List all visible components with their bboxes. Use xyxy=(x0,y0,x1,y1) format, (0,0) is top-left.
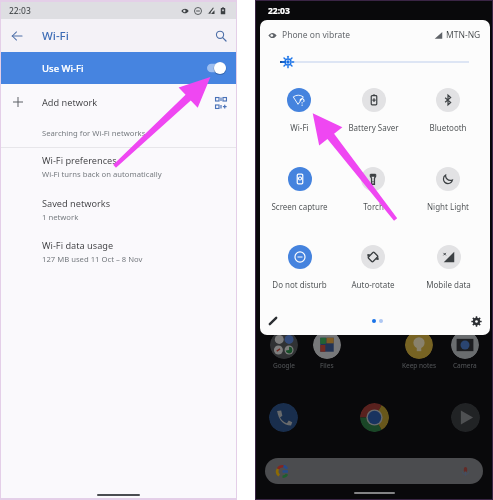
staticText: Torch xyxy=(363,201,384,212)
staticText: Night Light xyxy=(427,201,469,212)
staticText: Wi-Fi xyxy=(290,122,309,133)
button[interactable]: Battery Saver xyxy=(343,88,403,138)
button[interactable]: Night Light xyxy=(418,167,478,217)
button[interactable] xyxy=(451,331,479,359)
staticText: Wi-Fi turns back on automatically xyxy=(42,169,162,179)
staticText: 127 MB used 11 Oct – 8 Nov xyxy=(42,254,143,264)
button[interactable]: Back xyxy=(8,27,25,44)
staticText: Searching for Wi-Fi networks xyxy=(42,128,146,138)
staticText: Keep notes xyxy=(402,361,437,370)
staticText: Wi-Fi data usage xyxy=(42,239,114,252)
button[interactable]: Saved networks xyxy=(1,197,236,227)
button[interactable] xyxy=(270,331,298,359)
staticText: Do not disturb xyxy=(272,279,327,290)
button[interactable]: Wi-Fi xyxy=(269,88,329,138)
button[interactable]: Edit tiles xyxy=(265,313,281,329)
staticText: 22:03 xyxy=(268,5,290,17)
button[interactable] xyxy=(265,458,483,484)
button[interactable]: Screen capture xyxy=(269,167,329,217)
button[interactable] xyxy=(269,403,298,432)
staticText: Mobile data xyxy=(426,279,471,290)
button[interactable]: Auto-rotate xyxy=(343,245,403,295)
staticText: Wi-Fi xyxy=(42,28,69,44)
button[interactable]: Scan QR code xyxy=(213,95,228,110)
staticText: Phone on vibrate xyxy=(282,29,351,41)
staticText: MTN-NG xyxy=(446,29,481,41)
button[interactable]: Wi-Fi preferences xyxy=(1,154,236,184)
staticText: Add network xyxy=(42,96,98,109)
staticText: Camera xyxy=(453,361,477,370)
button[interactable]: Do not disturb xyxy=(269,245,329,295)
staticText: Google xyxy=(273,361,295,370)
button[interactable]: Bluetooth xyxy=(418,88,478,138)
staticText: Bluetooth xyxy=(429,122,467,133)
button[interactable]: Use Wi-Fi xyxy=(1,52,236,84)
staticText: 22:03 xyxy=(9,5,31,17)
staticText: Screen capture xyxy=(271,201,328,212)
staticText: Battery Saver xyxy=(348,122,399,133)
button[interactable] xyxy=(451,403,480,432)
staticText: Use Wi-Fi xyxy=(42,62,84,75)
button[interactable] xyxy=(405,331,433,359)
button[interactable]: Search xyxy=(212,27,229,44)
staticText: Wi-Fi preferences xyxy=(42,154,117,167)
button[interactable]: Mobile data xyxy=(418,245,478,295)
button[interactable] xyxy=(360,403,389,432)
staticText: 1 network xyxy=(42,212,79,222)
button[interactable]: Torch xyxy=(343,167,403,217)
staticText: Saved networks xyxy=(42,197,111,210)
button[interactable]: Wi-Fi data usage xyxy=(1,239,236,269)
staticText: Auto-rotate xyxy=(351,279,395,290)
staticText: Files xyxy=(320,361,334,370)
button[interactable]: Add network xyxy=(1,84,236,120)
button[interactable]: Settings xyxy=(468,313,484,329)
button[interactable] xyxy=(313,331,341,359)
